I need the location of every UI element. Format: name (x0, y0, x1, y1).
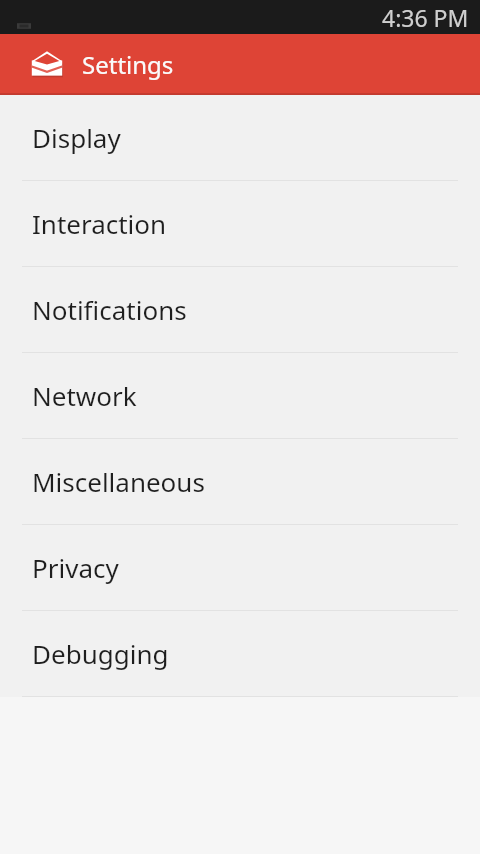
button[interactable]: Network (0, 353, 480, 439)
staticText: Network (32, 378, 137, 413)
staticText: Privacy (32, 550, 119, 585)
button[interactable]: Debugging (0, 611, 480, 697)
staticText: Notifications (32, 292, 187, 327)
staticText: Debugging (32, 636, 169, 671)
button[interactable]: Notifications (0, 267, 480, 353)
staticText: Display (32, 120, 121, 155)
staticText: Settings (82, 48, 174, 81)
button[interactable]: Interaction (0, 181, 480, 267)
staticText: 4:36 PM (382, 2, 469, 33)
button[interactable]: Display (0, 95, 480, 181)
button[interactable]: Miscellaneous (0, 439, 480, 525)
staticText: Interaction (32, 206, 167, 241)
button[interactable]: Privacy (0, 525, 480, 611)
staticText: Miscellaneous (32, 464, 205, 499)
other: App icon (28, 46, 66, 84)
